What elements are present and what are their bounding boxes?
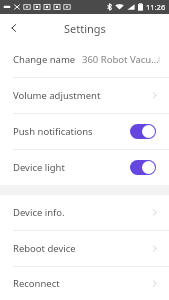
staticText: Push notifications bbox=[13, 125, 93, 138]
staticText: Device info. bbox=[13, 206, 65, 219]
staticText: Reconnect bbox=[13, 277, 60, 290]
button[interactable]: Reconnect bbox=[0, 267, 169, 300]
button[interactable]: Reboot device bbox=[0, 231, 169, 266]
button[interactable]: Volume adjustment bbox=[0, 78, 169, 113]
staticText: Reboot device bbox=[13, 242, 76, 255]
button[interactable]: Change name bbox=[0, 42, 169, 77]
staticText: Device light bbox=[13, 161, 65, 174]
staticText: Settings bbox=[64, 21, 106, 36]
button[interactable]: Back bbox=[0, 14, 28, 42]
button[interactable]: Push notifications bbox=[0, 114, 169, 149]
button[interactable]: Device info. bbox=[0, 195, 169, 230]
staticText: 360 Robot Vacu… bbox=[82, 53, 159, 66]
staticText: Volume adjustment bbox=[13, 89, 101, 102]
button[interactable]: Device light bbox=[0, 150, 169, 185]
staticText: Change name bbox=[13, 53, 76, 66]
staticText: 11:26 bbox=[146, 2, 166, 12]
